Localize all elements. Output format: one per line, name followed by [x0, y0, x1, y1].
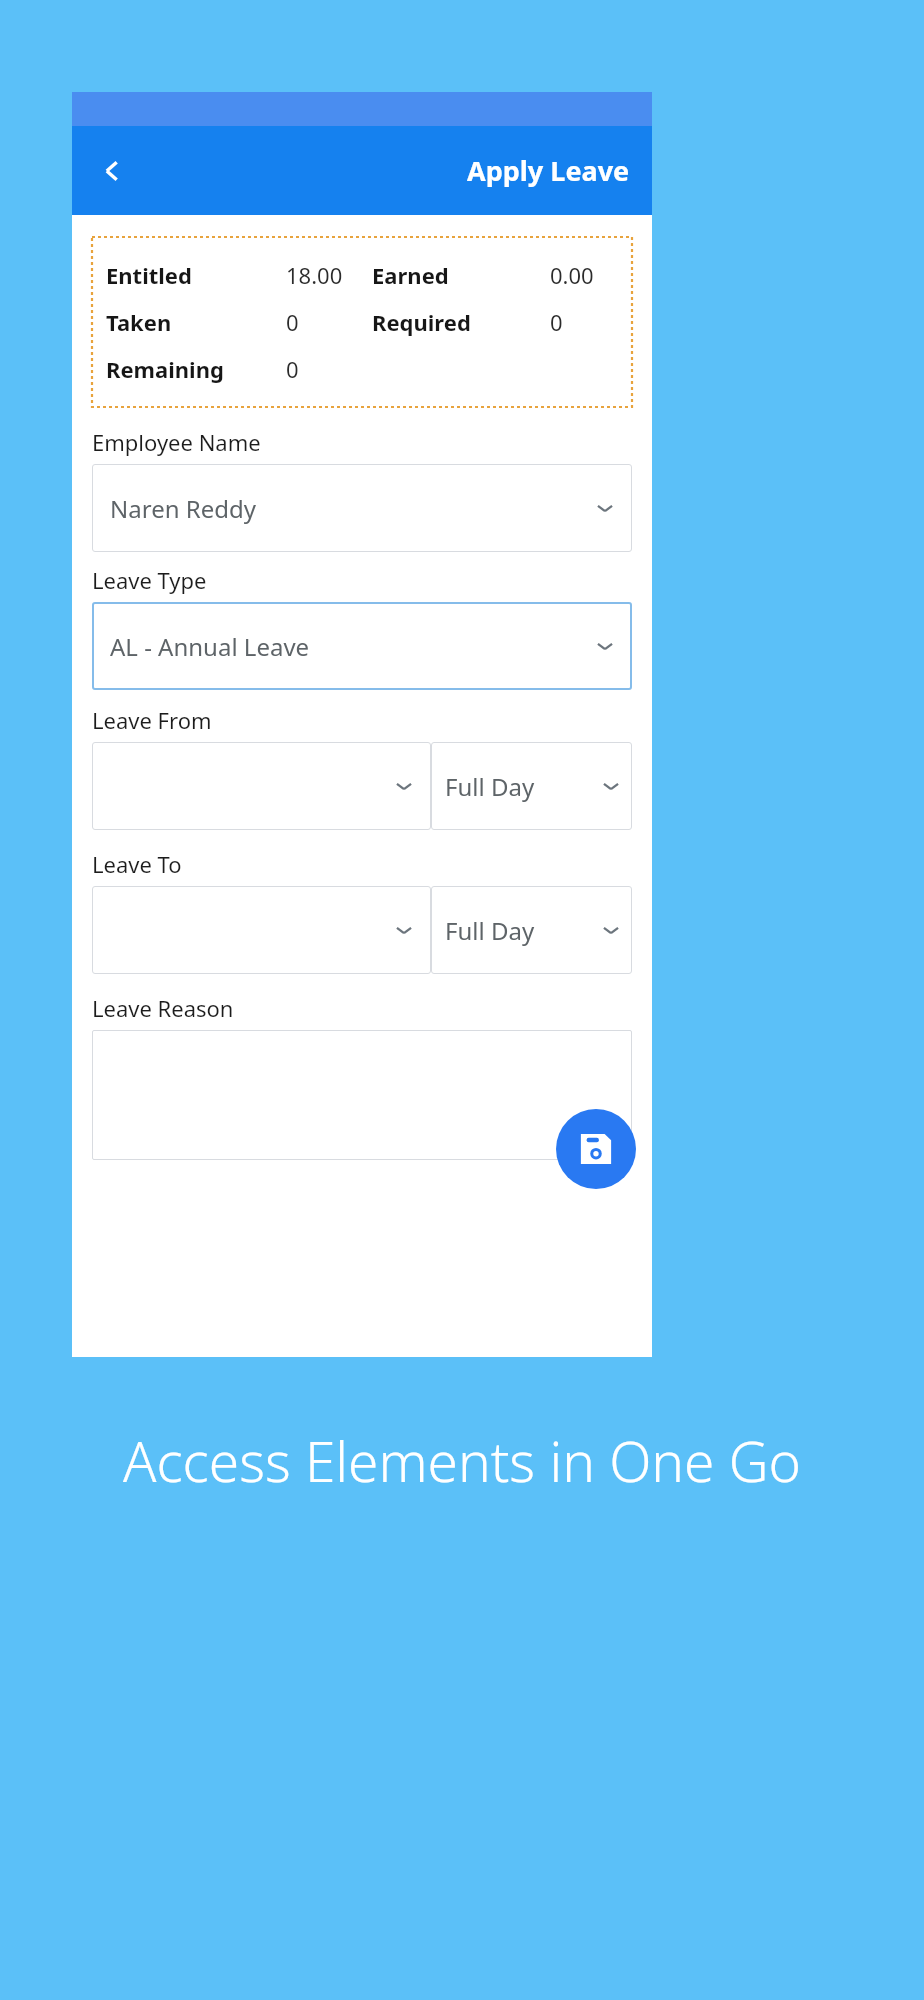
staticText: AL - Annual Leave — [110, 630, 310, 663]
staticText: Leave Type — [92, 565, 207, 595]
staticText: Employee Name — [92, 427, 261, 457]
staticText: Full Day — [445, 914, 535, 947]
staticText: Earned — [372, 260, 449, 290]
button[interactable]: Back — [84, 143, 140, 199]
button[interactable]: Save — [556, 1109, 636, 1189]
staticText: Required — [372, 307, 471, 337]
staticText: Entitled — [106, 260, 192, 290]
staticText: Access Elements in One Go — [0, 1423, 924, 1498]
staticText: 0 — [286, 354, 299, 384]
button[interactable]: Naren Reddy — [92, 464, 632, 552]
staticText: Full Day — [445, 770, 535, 803]
staticText: 18.00 — [286, 260, 343, 290]
staticText: Taken — [106, 307, 172, 337]
button[interactable]: AL - Annual Leave — [92, 602, 632, 690]
staticText: Remaining — [106, 354, 224, 384]
staticText: Leave Reason — [92, 993, 234, 1023]
staticText: 0 — [286, 307, 299, 337]
button[interactable]: Full Day — [431, 742, 632, 830]
button[interactable]: Select date — [92, 886, 431, 974]
staticText: Leave From — [92, 705, 212, 735]
staticText: Leave To — [92, 849, 182, 879]
staticText: Naren Reddy — [110, 492, 256, 525]
button[interactable]: Leave reason input — [92, 1030, 632, 1160]
button[interactable]: Full Day — [431, 886, 632, 974]
staticText: Apply Leave — [467, 152, 630, 189]
staticText: 0 — [550, 307, 563, 337]
staticText: 0.00 — [550, 260, 594, 290]
button[interactable]: Select date — [92, 742, 431, 830]
